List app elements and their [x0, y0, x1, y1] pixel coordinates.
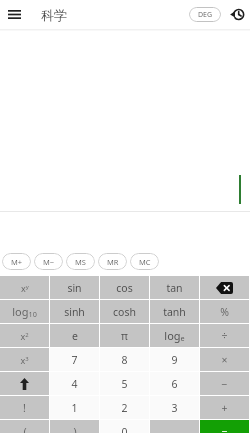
staticText: −	[221, 377, 228, 391]
button[interactable]: Shift	[0, 372, 49, 395]
button[interactable]: MC	[130, 253, 159, 270]
button[interactable]: 7	[50, 348, 99, 371]
staticText: ÷	[221, 329, 228, 343]
staticText: MS	[75, 257, 86, 267]
button[interactable]: DEG	[189, 7, 221, 22]
staticText: (	[23, 425, 27, 433]
staticText: tanh	[163, 305, 186, 319]
button[interactable]: 6	[150, 372, 199, 395]
staticText: =	[221, 425, 228, 433]
other: Shift	[20, 378, 29, 390]
staticText: MR	[107, 257, 119, 267]
button[interactable]: 3	[150, 396, 199, 419]
staticText: 5	[121, 377, 128, 391]
button[interactable]: 5	[100, 372, 149, 395]
button[interactable]: 0	[100, 420, 149, 433]
button[interactable]: MR	[98, 253, 127, 270]
button[interactable]: Menu	[0, 0, 29, 29]
other: Backspace	[216, 282, 233, 294]
button[interactable]: ÷	[200, 324, 249, 347]
staticText: 8	[121, 353, 128, 367]
staticText: 3	[171, 401, 178, 415]
button[interactable]: ×	[200, 348, 249, 371]
button[interactable]: 2	[100, 396, 149, 419]
staticText: 4	[71, 377, 78, 391]
button[interactable]: π	[100, 324, 149, 347]
staticText: xy	[21, 282, 29, 294]
button[interactable]: M−	[34, 253, 63, 270]
staticText: 2	[121, 401, 128, 415]
staticText: cosh	[113, 305, 136, 319]
staticText: 6	[171, 377, 178, 391]
staticText: log10	[12, 304, 37, 319]
staticText: %	[220, 305, 229, 319]
staticText: loge	[164, 328, 185, 343]
button[interactable]: !	[0, 396, 49, 419]
staticText: x2	[20, 330, 29, 342]
button[interactable]: =	[200, 420, 249, 433]
button[interactable]: 4	[50, 372, 99, 395]
staticText: sin	[67, 281, 82, 295]
staticText: π	[121, 329, 128, 343]
button[interactable]: MS	[66, 253, 95, 270]
button[interactable]: sin	[50, 276, 99, 299]
staticText: e	[72, 329, 78, 343]
staticText: ×	[221, 353, 228, 367]
button[interactable]: +	[200, 396, 249, 419]
staticText: cos	[116, 281, 133, 295]
staticText: DEG	[198, 10, 213, 20]
button[interactable]: tanh	[150, 300, 199, 323]
button[interactable]: 1	[50, 396, 99, 419]
staticText: M+	[11, 257, 23, 267]
button[interactable]: )	[50, 420, 99, 433]
staticText: x3	[20, 354, 29, 366]
button[interactable]: x2	[0, 324, 49, 347]
button[interactable]: cosh	[100, 300, 149, 323]
button[interactable]: 8	[100, 348, 149, 371]
staticText: 7	[71, 353, 78, 367]
staticText: !	[23, 401, 26, 415]
button[interactable]: x3	[0, 348, 49, 371]
staticText: tan	[166, 281, 183, 295]
staticText: +	[221, 401, 228, 415]
button[interactable]: Backspace	[200, 276, 249, 299]
button[interactable]: log10	[0, 300, 49, 323]
button[interactable]: sinh	[50, 300, 99, 323]
button[interactable]: cos	[100, 276, 149, 299]
button[interactable]: %	[200, 300, 249, 323]
button[interactable]: tan	[150, 276, 199, 299]
staticText: M−	[43, 257, 55, 267]
button[interactable]: 9	[150, 348, 199, 371]
staticText: 0	[121, 425, 128, 433]
staticText: MC	[139, 257, 151, 267]
staticText: 1	[71, 401, 78, 415]
staticText: 科学	[41, 7, 67, 23]
staticText: 9	[171, 353, 178, 367]
staticText: sinh	[64, 305, 85, 319]
button[interactable]: e	[50, 324, 99, 347]
button[interactable]: M+	[2, 253, 31, 270]
button[interactable]: loge	[150, 324, 199, 347]
button[interactable]: History	[225, 0, 249, 29]
staticText: )	[73, 425, 77, 433]
button[interactable]: −	[200, 372, 249, 395]
button[interactable]: xy	[0, 276, 49, 299]
button[interactable]: (	[0, 420, 49, 433]
